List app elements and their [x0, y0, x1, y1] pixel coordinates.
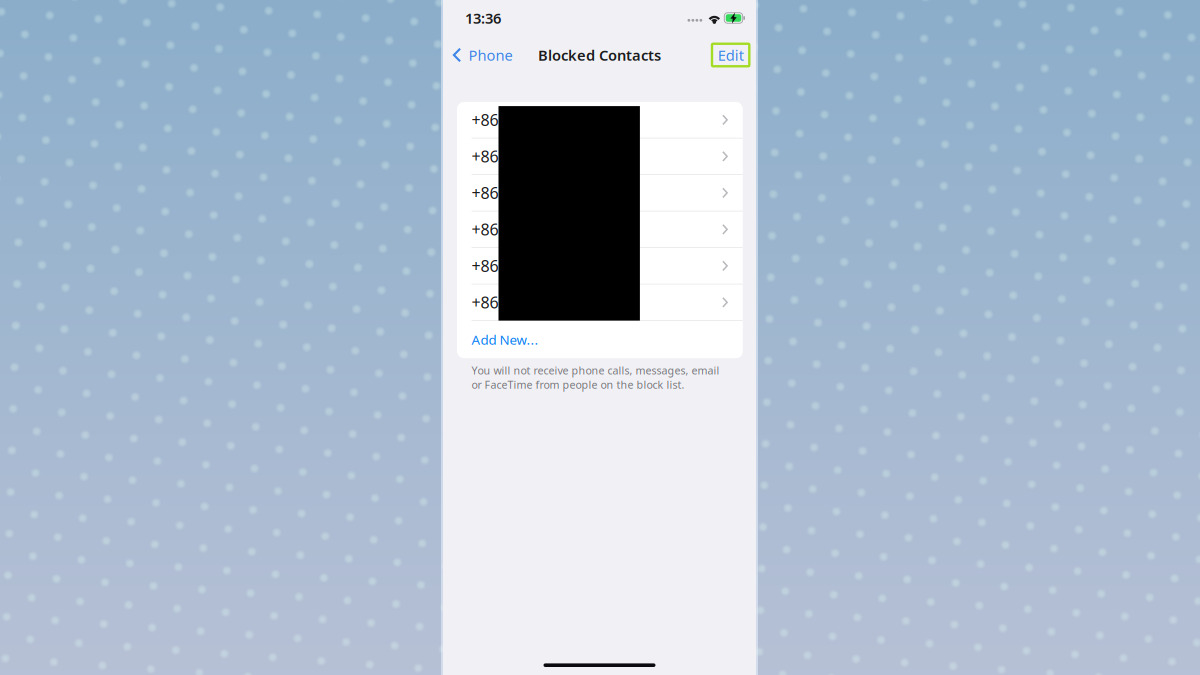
staticText: 13:36: [465, 8, 501, 28]
staticText: +86: [472, 182, 499, 203]
button[interactable]: Edit: [712, 44, 749, 66]
staticText: +86: [472, 219, 499, 240]
button[interactable]: +86: [457, 284, 743, 320]
button[interactable]: +86: [457, 211, 743, 247]
button[interactable]: Back to Phone: [443, 40, 518, 70]
staticText: +86: [472, 292, 499, 313]
staticText: +86: [472, 146, 499, 167]
button[interactable]: +86: [457, 138, 743, 174]
button[interactable]: +86: [457, 175, 743, 211]
staticText: +86: [472, 255, 499, 276]
staticText: Blocked Contacts: [538, 45, 661, 65]
staticText: Phone: [468, 45, 512, 65]
staticText: You will not receive phone calls, messag…: [471, 363, 719, 392]
button[interactable]: +86: [457, 248, 743, 284]
staticText: Add New...: [472, 331, 539, 348]
button[interactable]: +86: [457, 102, 743, 138]
button[interactable]: Add New...: [457, 321, 743, 358]
staticText: +86: [472, 109, 499, 130]
staticText: Edit: [718, 45, 744, 65]
